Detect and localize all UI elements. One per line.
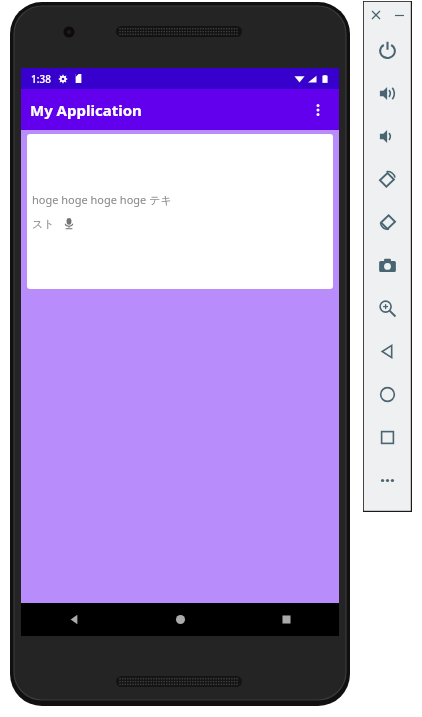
button[interactable]: Recent apps [233,603,339,636]
button[interactable]: Voice input [61,216,77,232]
button[interactable]: Minimize [390,6,408,24]
button[interactable]: Home [127,603,233,636]
button[interactable]: Zoom [363,287,412,330]
button[interactable]: Back [363,330,412,373]
staticText: My Application [30,100,142,120]
button[interactable]: Volume down [363,115,412,158]
button[interactable]: Overview [363,416,412,459]
button[interactable]: More [363,459,412,502]
button[interactable]: Volume up [363,72,412,115]
button[interactable]: Back [21,603,127,636]
button[interactable]: Rotate left [363,158,412,201]
staticText: hoge hoge hoge hoge テキ [32,192,172,207]
button[interactable]: Home [363,373,412,416]
button[interactable]: Power [363,29,412,72]
staticText: 1:38 [31,72,51,86]
button[interactable]: Screenshot [363,244,412,287]
button[interactable]: hoge hoge hoge hoge テキ [27,134,333,289]
button[interactable]: Close [367,6,385,24]
staticText: スト [32,217,55,231]
button[interactable]: Rotate right [363,201,412,244]
button[interactable]: More options [305,97,331,123]
